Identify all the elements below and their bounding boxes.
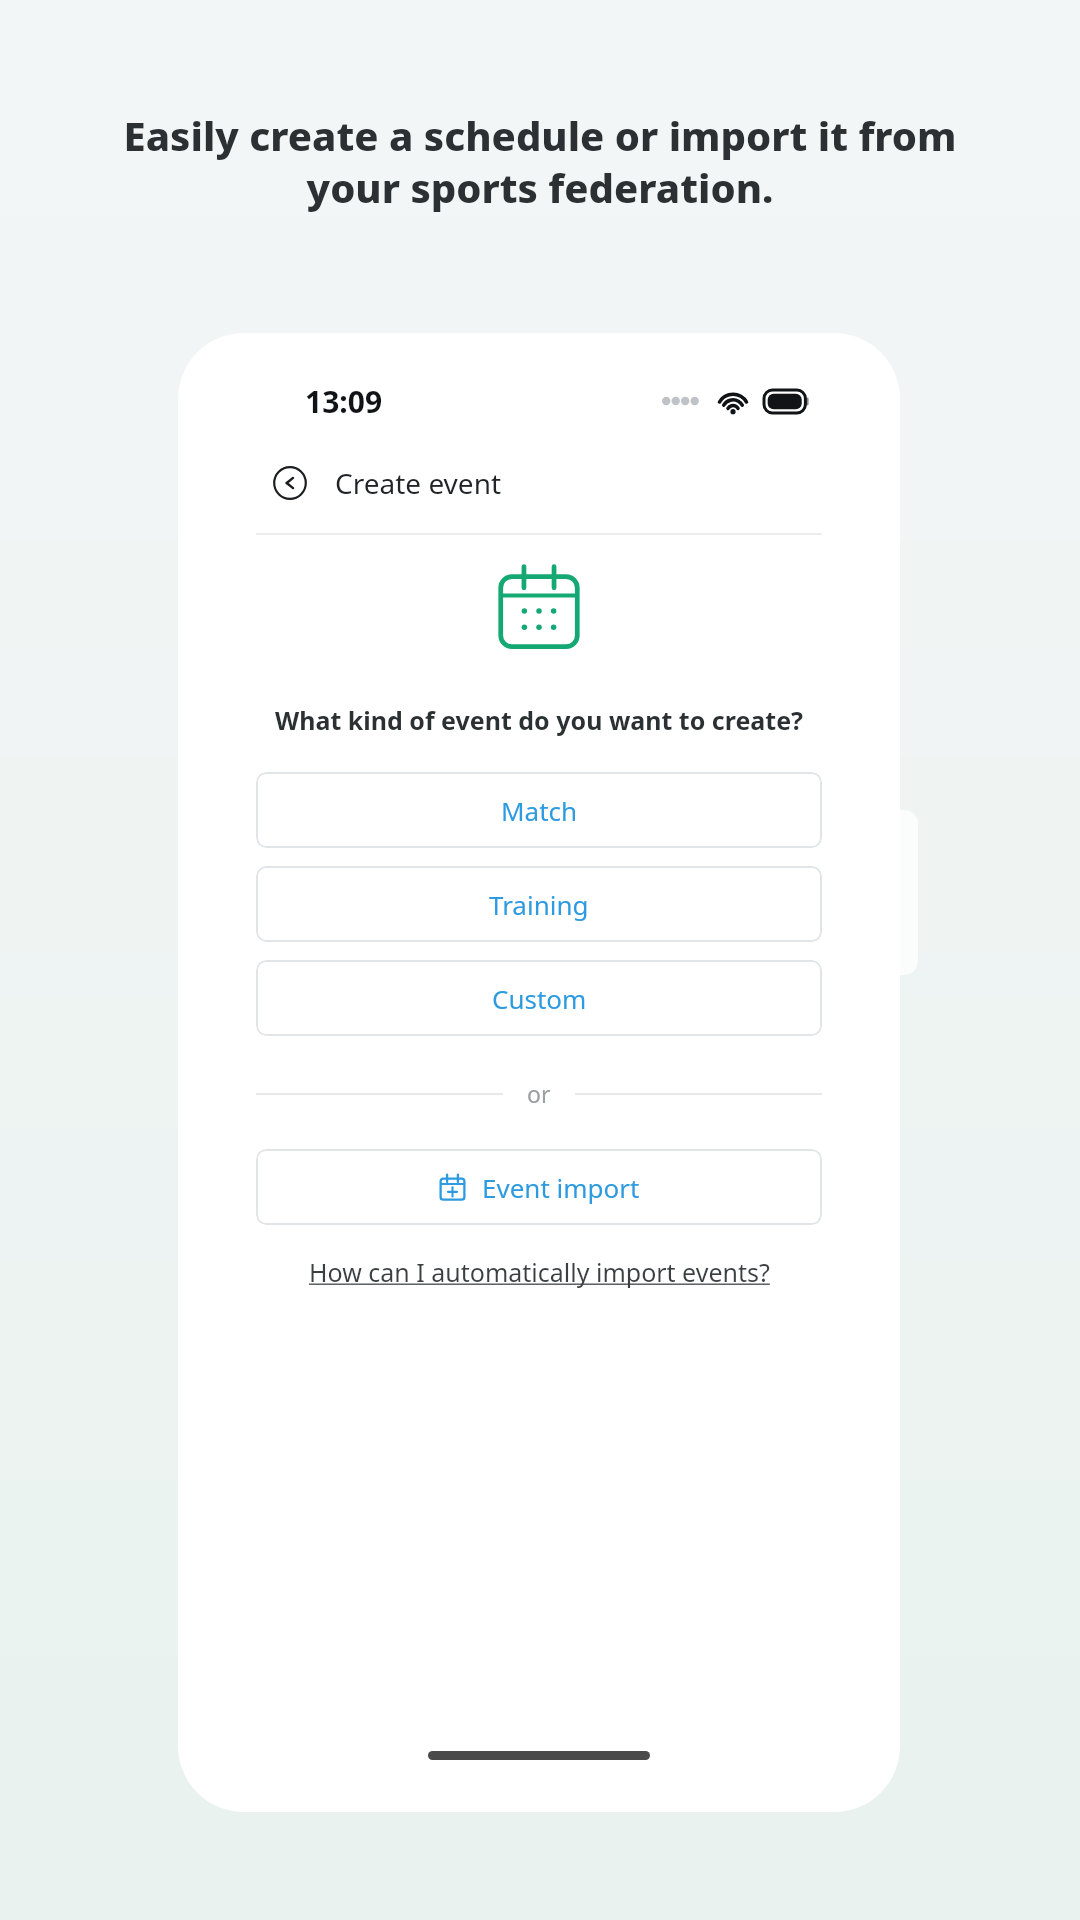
button[interactable]: Back [268, 461, 312, 505]
button[interactable]: Match [256, 772, 822, 848]
staticText: What kind of event do you want to create… [178, 703, 900, 737]
staticText: Easily create a schedule or import it fr… [0, 108, 1080, 215]
button[interactable]: Event import [256, 1149, 822, 1225]
button[interactable]: Training [256, 866, 822, 942]
staticText: 13:09 [305, 381, 383, 422]
staticText: Event import [482, 1170, 640, 1205]
staticText: Create event [335, 464, 502, 502]
button[interactable]: How can I automatically import events? [301, 1251, 778, 1293]
staticText: Custom [492, 981, 587, 1016]
staticText: or [527, 1078, 551, 1109]
staticText: Training [489, 887, 589, 922]
staticText: Match [501, 793, 578, 828]
button[interactable]: Custom [256, 960, 822, 1036]
